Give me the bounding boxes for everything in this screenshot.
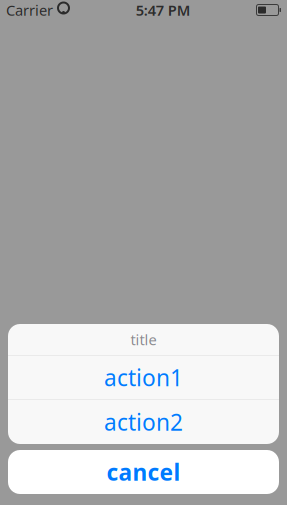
- staticText: title: [130, 330, 156, 349]
- staticText: action2: [104, 407, 183, 437]
- button[interactable]: cancel: [8, 450, 279, 494]
- button[interactable]: action1: [8, 355, 279, 399]
- staticText: action1: [104, 362, 183, 392]
- staticText: Carrier: [6, 0, 53, 20]
- staticText: 5:47 PM: [136, 0, 191, 20]
- button[interactable]: action2: [8, 400, 279, 444]
- staticText: cancel: [106, 457, 180, 487]
